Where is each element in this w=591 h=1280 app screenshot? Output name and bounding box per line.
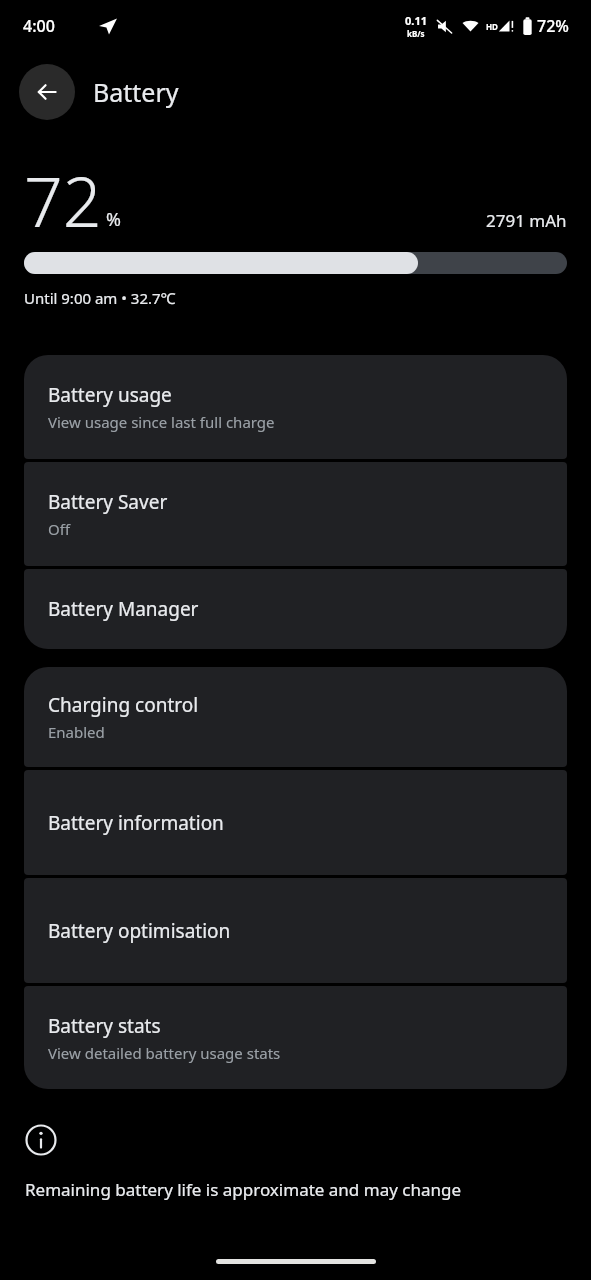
button[interactable]: Battery Saver	[24, 462, 567, 566]
staticText: Battery Saver	[48, 489, 168, 515]
staticText: 72%	[537, 15, 569, 37]
button[interactable]: Charging control	[24, 667, 567, 767]
staticText: Battery	[93, 75, 179, 109]
staticText: 2791 mAh	[486, 209, 567, 232]
button[interactable]: Battery stats	[24, 986, 567, 1089]
button[interactable]: Battery usage	[24, 355, 567, 459]
staticText: Charging control	[48, 692, 199, 718]
staticText: View detailed battery usage stats	[48, 1043, 281, 1063]
button[interactable]: Battery information	[24, 770, 567, 875]
staticText: 72	[24, 154, 102, 240]
staticText: 0.11	[405, 13, 427, 28]
staticText: kB/s	[407, 28, 425, 39]
staticText: Remaining battery life is approximate an…	[25, 1178, 462, 1201]
staticText: View usage since last full charge	[48, 412, 275, 432]
staticText: Enabled	[48, 722, 105, 742]
staticText: Battery optimisation	[48, 918, 231, 944]
staticText: Battery stats	[48, 1013, 161, 1039]
staticText: Battery information	[48, 810, 224, 836]
button[interactable]: Back	[19, 64, 75, 120]
button[interactable]: Battery optimisation	[24, 878, 567, 983]
staticText: 4:00	[23, 15, 55, 37]
button[interactable]: Battery Manager	[24, 569, 567, 649]
staticText: Battery Manager	[48, 596, 199, 622]
staticText: HD	[486, 21, 498, 32]
staticText: Until 9:00 am • 32.7℃	[24, 288, 176, 308]
staticText: %	[106, 207, 121, 232]
staticText: Battery usage	[48, 382, 172, 408]
staticText: Off	[48, 519, 71, 539]
